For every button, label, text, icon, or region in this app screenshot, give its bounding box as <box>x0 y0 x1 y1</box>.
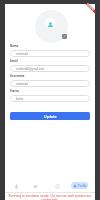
button[interactable]: mohanad <box>10 50 90 57</box>
staticText: Profile <box>78 184 87 188</box>
staticText: Running in emulator mode. Do not use wit… <box>8 194 92 200</box>
button[interactable]: Tasks <box>53 182 62 191</box>
button[interactable]: mohitek46@gmail.com <box>10 65 90 72</box>
button[interactable]: Home <box>12 182 21 191</box>
button[interactable]: Saved <box>31 182 40 191</box>
staticText: mohitek46@gmail.com <box>16 67 45 71</box>
staticText: Name <box>10 44 19 48</box>
staticText: mohanad <box>16 82 28 86</box>
button[interactable]: Edit profile picture <box>62 34 67 39</box>
staticText: mohanad <box>16 52 28 56</box>
staticText: Status <box>10 89 19 93</box>
button[interactable]: Active <box>10 95 90 102</box>
staticText: Username <box>10 74 25 78</box>
button[interactable]: Profile <box>71 182 88 189</box>
staticText: Active <box>16 97 24 101</box>
staticText: Update <box>44 114 57 119</box>
button[interactable]: mohanad <box>10 80 90 87</box>
staticText: DEBUG <box>86 2 95 12</box>
staticText: Email <box>10 59 18 63</box>
button[interactable]: Update <box>10 112 90 120</box>
